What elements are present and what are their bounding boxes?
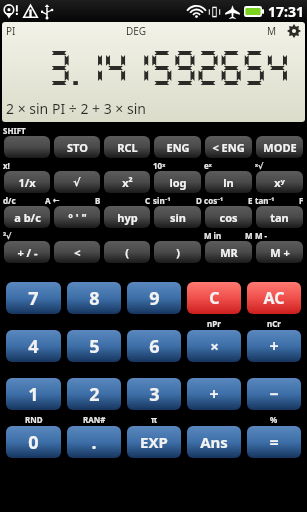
button[interactable]: 7	[6, 282, 61, 314]
staticText: .	[91, 430, 97, 455]
staticText: nCr	[267, 318, 281, 329]
staticText: 7	[28, 286, 39, 311]
button[interactable]: ENG	[154, 136, 201, 158]
button[interactable]: STO	[54, 136, 100, 158]
button[interactable]: =	[247, 426, 301, 458]
staticText: sin⁻¹	[153, 195, 171, 206]
button[interactable]: x²	[104, 171, 150, 193]
staticText: 3	[149, 382, 160, 407]
staticText: sin	[170, 210, 186, 225]
button[interactable]: 2	[67, 378, 121, 410]
button[interactable]: cos	[205, 206, 252, 228]
staticText: ENG	[166, 140, 190, 155]
button[interactable]: C	[187, 282, 241, 314]
staticText: ln	[223, 175, 234, 190]
staticText: M +	[270, 245, 290, 260]
button[interactable]: )	[154, 241, 201, 263]
button[interactable]: −	[247, 378, 301, 410]
button[interactable]: 0	[6, 426, 61, 458]
button[interactable]: ln	[205, 171, 252, 193]
staticText: hyp	[117, 210, 138, 225]
staticText: cos	[219, 210, 238, 225]
button[interactable]: ×	[187, 330, 241, 362]
staticText: ←	[53, 196, 60, 205]
staticText: nPr	[207, 318, 221, 329]
button[interactable]: RCL	[104, 136, 150, 158]
staticText: 10ˣ	[153, 160, 166, 171]
button[interactable]: 5	[67, 330, 121, 362]
staticText: tan	[270, 210, 289, 225]
button[interactable]: 6	[127, 330, 181, 362]
staticText: +	[269, 335, 279, 357]
staticText: )	[176, 245, 180, 260]
button[interactable]: (	[104, 241, 150, 263]
staticText: 5	[89, 334, 100, 359]
staticText: 2	[89, 382, 100, 407]
button[interactable]: log	[154, 171, 201, 193]
button[interactable]: +	[187, 378, 241, 410]
staticText: cos⁻¹	[204, 195, 224, 206]
staticText: x²	[122, 175, 133, 190]
button[interactable]: 3	[127, 378, 181, 410]
staticText: AC	[263, 287, 285, 309]
button[interactable]: + / -	[4, 241, 50, 263]
staticText: xʸ	[274, 175, 285, 190]
button[interactable]: xʸ	[256, 171, 303, 193]
button[interactable]: +	[247, 330, 301, 362]
staticText: %	[270, 414, 278, 425]
button[interactable]: sin	[154, 206, 201, 228]
staticText: F	[299, 195, 304, 206]
button[interactable]: Settings	[287, 24, 301, 38]
staticText: < ENG	[212, 140, 245, 155]
staticText: C	[145, 195, 151, 206]
staticText: 1/x	[18, 175, 36, 190]
staticText: RND	[25, 414, 43, 425]
button[interactable]: <	[54, 241, 100, 263]
staticText: +	[209, 383, 219, 405]
staticText: M in	[204, 230, 222, 241]
staticText: PI	[6, 24, 16, 38]
staticText: DEG	[126, 24, 147, 38]
staticText: B	[95, 195, 101, 206]
button[interactable]: 4	[6, 330, 61, 362]
staticText: 2 × sin PI ÷ 2 + 3 × sin	[6, 99, 146, 118]
staticText: C	[209, 287, 220, 309]
button[interactable]: MODE	[256, 136, 303, 158]
button[interactable]: ° ' "	[54, 206, 100, 228]
staticText: RCL	[117, 140, 138, 155]
staticText: tan⁻¹	[255, 195, 275, 206]
staticText: π	[151, 414, 157, 425]
button[interactable]: .	[67, 426, 121, 458]
button[interactable]: 1	[6, 378, 61, 410]
button[interactable]: AC	[247, 282, 301, 314]
staticText: 8	[89, 286, 100, 311]
staticText: MODE	[263, 140, 297, 155]
button[interactable]: M +	[256, 241, 303, 263]
button[interactable]	[4, 136, 50, 158]
staticText: Ans	[200, 432, 228, 452]
button[interactable]: tan	[256, 206, 303, 228]
staticText: SHIFT	[3, 125, 26, 136]
staticText: EXP	[140, 432, 168, 452]
button[interactable]: MR	[205, 241, 252, 263]
staticText: 9	[149, 286, 160, 311]
button[interactable]: 9	[127, 282, 181, 314]
staticText: A	[45, 195, 51, 206]
button[interactable]: 8	[67, 282, 121, 314]
staticText: M	[267, 24, 277, 38]
staticText: x!	[3, 160, 10, 171]
button[interactable]: hyp	[104, 206, 150, 228]
staticText: + / -	[17, 245, 38, 260]
button[interactable]: Ans	[187, 426, 241, 458]
button[interactable]: √	[54, 171, 100, 193]
button[interactable]: a b/c	[4, 206, 50, 228]
staticText: eˣ	[204, 160, 212, 171]
staticText: a b/c	[14, 210, 41, 225]
staticText: 0	[28, 430, 39, 455]
staticText: √	[73, 176, 81, 189]
staticText: STO	[67, 140, 88, 155]
button[interactable]: EXP	[127, 426, 181, 458]
button[interactable]: < ENG	[205, 136, 252, 158]
button[interactable]: 1/x	[4, 171, 50, 193]
staticText: M -	[255, 230, 268, 241]
